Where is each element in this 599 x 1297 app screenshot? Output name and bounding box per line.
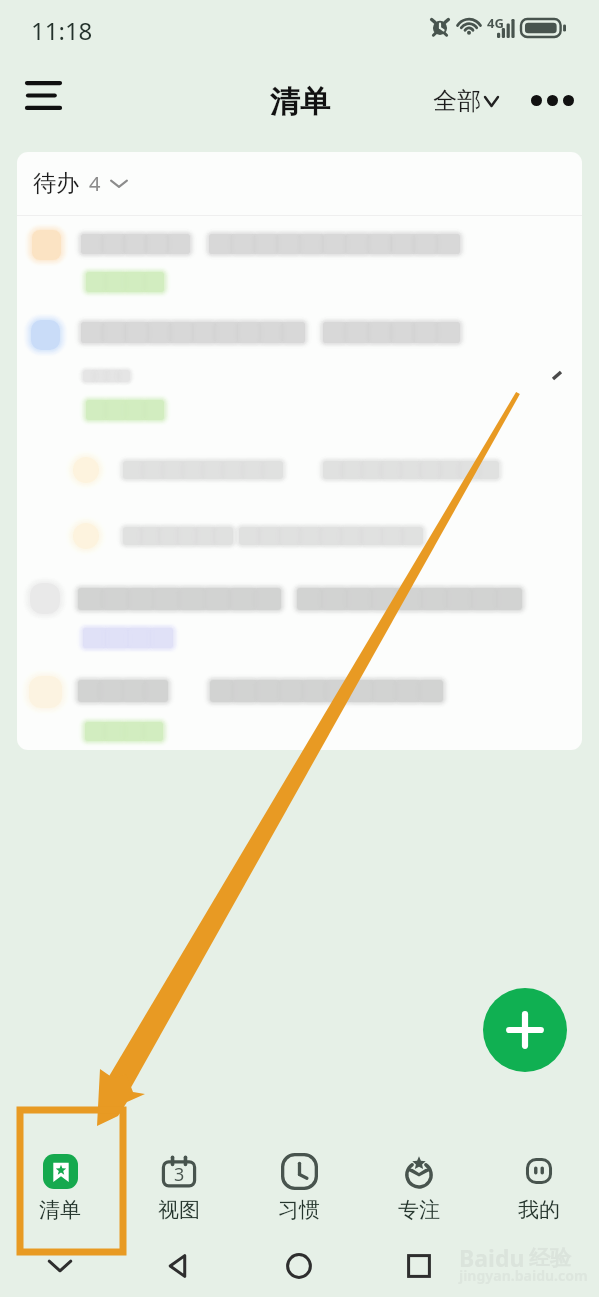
staticText: 清单 [270, 83, 330, 121]
button[interactable]: 待办 [17, 152, 582, 215]
button[interactable]: Task 4 [17, 661, 582, 749]
button[interactable]: Subtask 2 [17, 507, 582, 567]
button[interactable]: Back [119, 1234, 239, 1297]
button[interactable]: More options [525, 73, 579, 127]
button[interactable]: Recents [359, 1234, 479, 1297]
button[interactable]: Hide keyboard [0, 1234, 119, 1297]
staticText: 专注 [398, 1197, 440, 1223]
button[interactable]: 清单 [0, 1136, 119, 1223]
button[interactable]: 我的 [479, 1136, 599, 1223]
staticText: 全部 [433, 86, 481, 116]
button[interactable]: Home [239, 1234, 359, 1297]
staticText: 我的 [518, 1197, 560, 1223]
button[interactable]: 习惯 [239, 1136, 359, 1223]
button[interactable]: Task 2 [17, 304, 582, 434]
staticText: 待办 [33, 169, 79, 198]
staticText: 习惯 [278, 1197, 320, 1223]
staticText: 视图 [158, 1197, 200, 1223]
staticText: 4 [89, 170, 101, 197]
button[interactable]: Task 1 [17, 216, 582, 304]
button[interactable]: Task 3 [17, 567, 582, 661]
staticText: 清单 [39, 1197, 81, 1223]
button[interactable]: 3 [119, 1136, 239, 1223]
button[interactable]: Menu [10, 62, 76, 128]
button[interactable]: Add task [483, 988, 567, 1072]
staticText: 4G [487, 14, 504, 32]
staticText: Baidu [459, 1242, 525, 1273]
button[interactable]: 专注 [359, 1136, 479, 1223]
button[interactable]: Subtask 1 [17, 442, 582, 504]
button[interactable]: 全部 [424, 76, 507, 126]
staticText: jingyan.baidu.com [459, 1266, 588, 1285]
staticText: 11:18 [31, 14, 93, 47]
staticText: 3 [174, 1162, 185, 1187]
staticText: 经验 [529, 1245, 571, 1271]
